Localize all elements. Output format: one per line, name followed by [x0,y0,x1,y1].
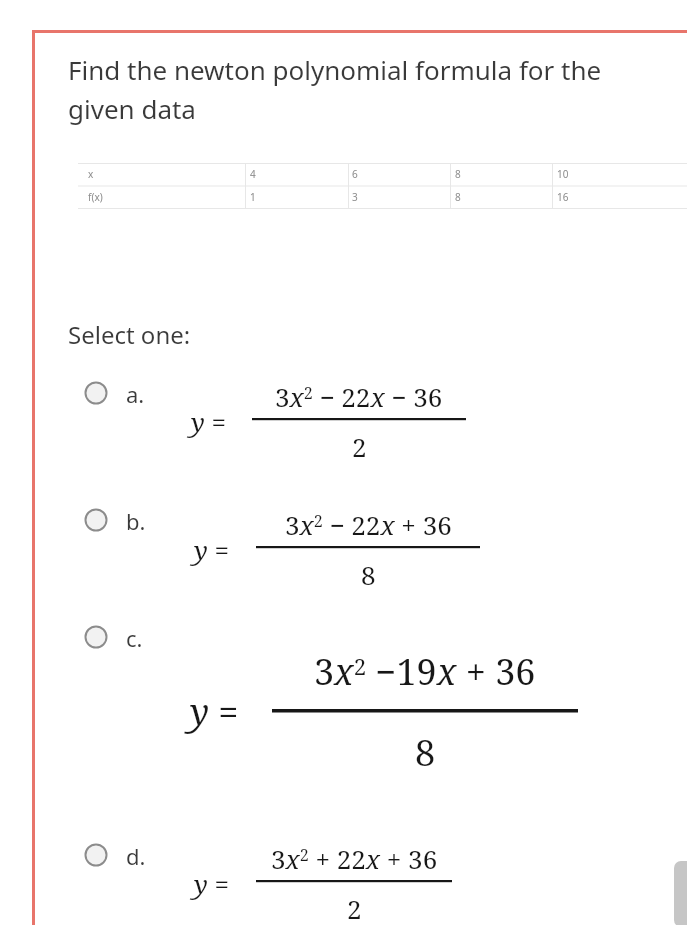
staticText: 10 [557,167,569,181]
staticText: 3x2 −19x + 36 [314,647,536,696]
staticText: 2 [347,891,362,925]
button[interactable]: Scroll [674,861,687,925]
staticText: 1 [250,190,256,204]
button[interactable]: b. [84,506,170,538]
staticText: Select one: [68,318,191,351]
staticText: d. [126,841,146,871]
staticText: y = [194,532,230,567]
staticText: y = [190,687,239,736]
staticText: 3x2 + 22x + 36 [271,841,438,876]
staticText: 2 [352,429,367,464]
button[interactable]: d. [84,841,170,873]
staticText: 8 [455,190,461,204]
staticText: 6 [352,167,358,181]
staticText: 16 [557,190,569,204]
staticText: x [88,167,94,181]
staticText: 4 [250,167,256,181]
button[interactable]: c. [84,623,170,655]
staticText: 3x2 − 22x + 36 [285,507,452,542]
staticText: c. [126,623,143,653]
button[interactable]: a. [84,379,170,411]
staticText: b. [126,506,146,536]
staticText: y = [194,866,230,901]
staticText: 3 [352,190,358,204]
staticText: f(x) [88,190,103,204]
staticText: 8 [361,557,376,592]
staticText: Find the newton polynomial formula for t… [68,52,602,127]
staticText: 8 [455,167,461,181]
staticText: y = [191,404,227,439]
staticText: 3x2 − 22x − 36 [275,379,443,414]
staticText: 8 [415,728,436,777]
staticText: a. [126,379,145,409]
